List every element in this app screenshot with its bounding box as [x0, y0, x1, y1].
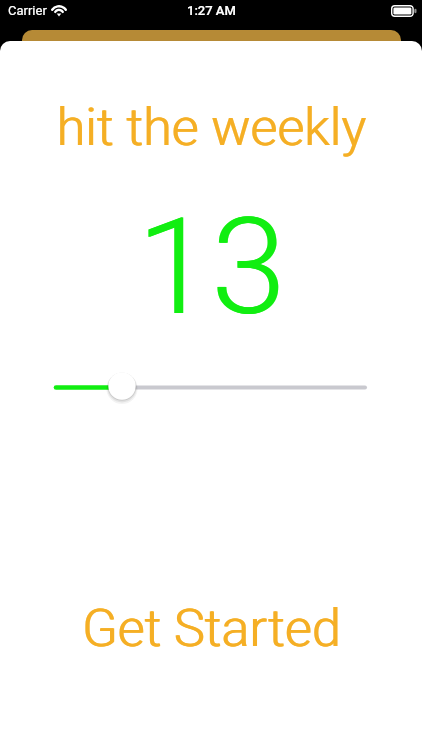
- staticText: hit the weekly: [0, 97, 422, 158]
- staticText: Get Started: [1, 598, 422, 658]
- staticText: 1:27 AM: [187, 3, 236, 18]
- staticText: Get Started: [0, 598, 422, 658]
- staticText: Carrier: [8, 3, 47, 18]
- button[interactable]: Weekly goal slider: [0, 366, 422, 406]
- staticText: hit the weekly: [1, 97, 422, 158]
- staticText: 13: [0, 189, 422, 346]
- staticText: 13: [1, 189, 422, 346]
- button[interactable]: Get Started: [0, 598, 422, 658]
